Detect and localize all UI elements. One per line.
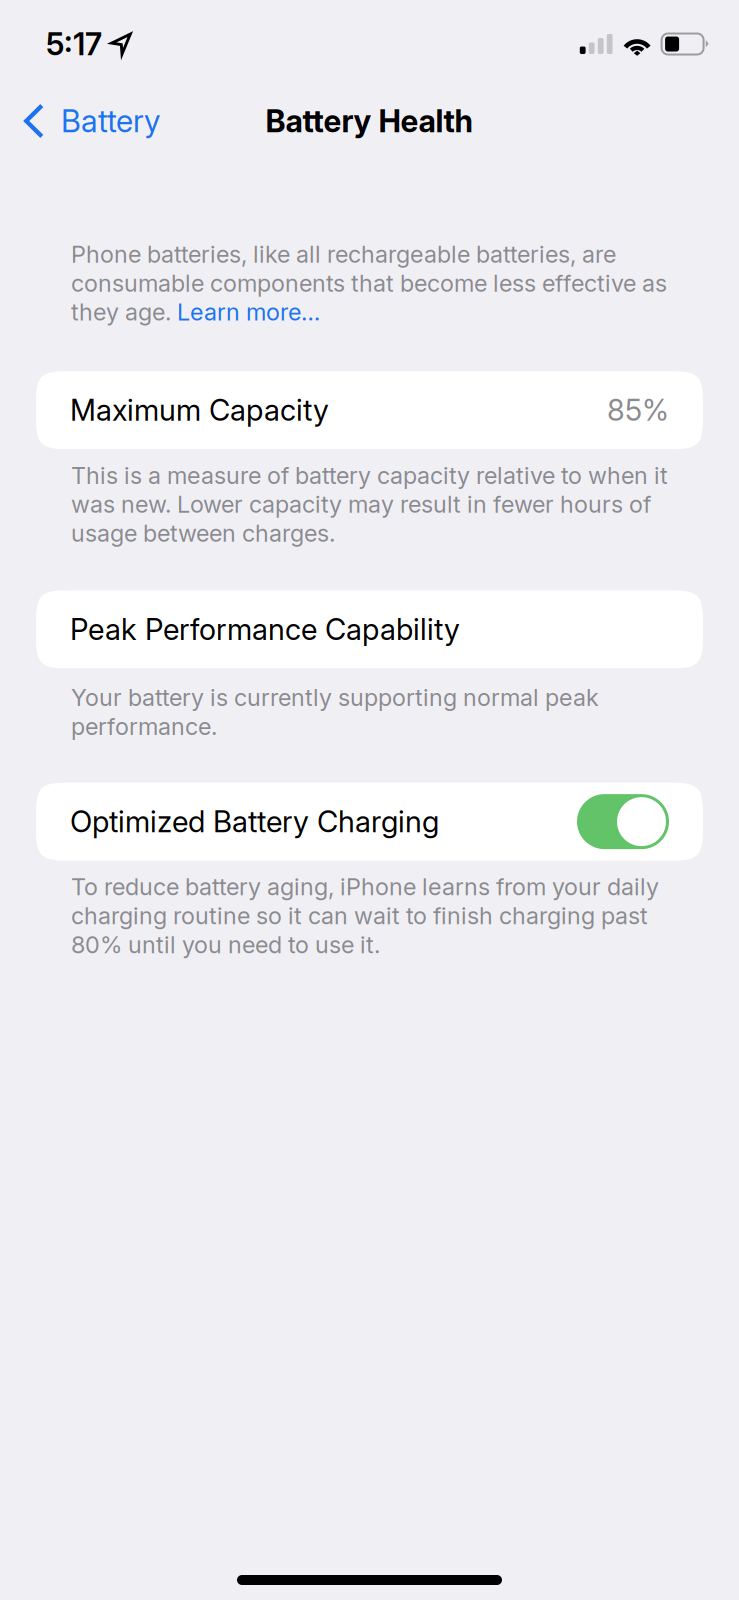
button[interactable]: Learn more… (177, 298, 320, 326)
staticText: Battery Health (265, 102, 473, 139)
button[interactable]: Peak Performance Capability (36, 590, 703, 668)
staticText: Maximum Capacity (70, 392, 329, 428)
button[interactable]: Optimized Battery Charging (36, 783, 703, 861)
button[interactable]: Maximum Capacity (36, 371, 703, 449)
staticText: they age. (71, 298, 177, 326)
staticText: Optimized Battery Charging (70, 804, 439, 839)
staticText: Battery (61, 102, 160, 139)
staticText: Phone batteries, like all rechargeable b… (71, 240, 667, 297)
staticText: Peak Performance Capability (70, 612, 460, 647)
staticText: This is a measure of battery capacity re… (71, 461, 668, 547)
button[interactable]: Battery (0, 88, 174, 154)
staticText: Your battery is currently supporting nor… (71, 683, 599, 741)
staticText: To reduce battery aging, iPhone learns f… (71, 873, 659, 959)
staticText: 5:17 (46, 25, 102, 62)
staticText: Learn more… (177, 298, 320, 326)
staticText: 85% (607, 392, 669, 428)
